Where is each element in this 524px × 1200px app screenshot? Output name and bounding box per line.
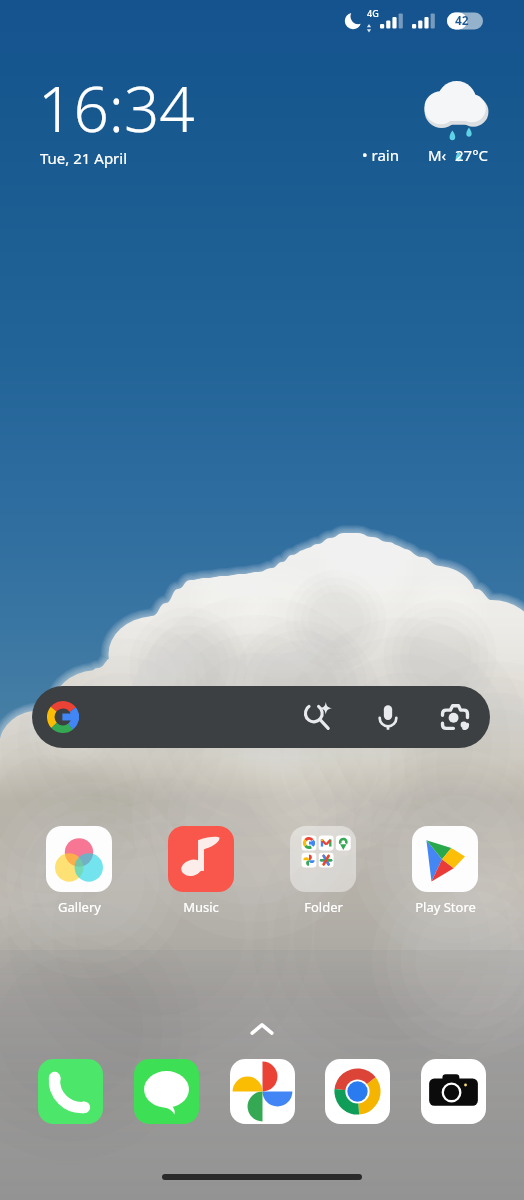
button[interactable]: Open app drawer: [242, 1010, 282, 1050]
staticText: Gallery: [58, 898, 101, 916]
button[interactable]: Search with AI: [32, 686, 490, 748]
button[interactable]: Gallery: [46, 826, 112, 916]
staticText: • rain: [362, 145, 399, 165]
button[interactable]: Weather: [420, 76, 492, 142]
staticText: 42: [455, 12, 469, 28]
staticText: Folder: [304, 898, 343, 916]
staticText: Music: [183, 898, 219, 916]
button[interactable]: Messages: [134, 1059, 199, 1124]
staticText: 4G: [367, 7, 379, 19]
staticText: 27°C: [455, 145, 489, 165]
button[interactable]: Google Lens: [439, 701, 471, 733]
button[interactable]: Photos: [230, 1059, 295, 1124]
staticText: M‹: [428, 145, 447, 165]
staticText: Play Store: [415, 898, 476, 916]
staticText: 16:34: [38, 66, 195, 150]
button[interactable]: Music: [168, 826, 234, 916]
button[interactable]: Play Store: [412, 826, 478, 916]
staticText: Tue, 21 April: [40, 148, 128, 168]
button[interactable]: Camera: [421, 1059, 486, 1124]
button[interactable]: Folder: [290, 826, 356, 916]
button[interactable]: Chrome: [325, 1059, 390, 1124]
button[interactable]: Phone: [38, 1059, 103, 1124]
button[interactable]: Voice search: [372, 701, 404, 733]
button[interactable]: Search with AI: [303, 702, 333, 732]
